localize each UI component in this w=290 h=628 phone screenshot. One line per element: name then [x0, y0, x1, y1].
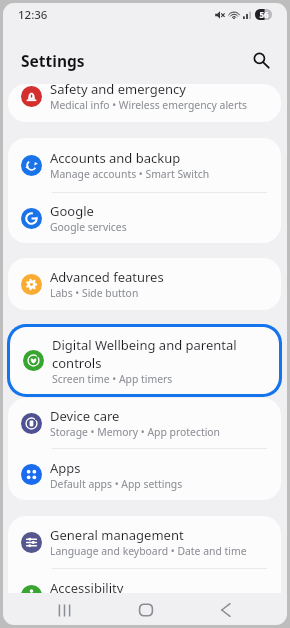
- button[interactable]: Google: [8, 193, 281, 243]
- staticText: Advanced features: [50, 268, 164, 286]
- staticText: Storage • Memory • App protection: [50, 425, 221, 439]
- staticText: Manage accounts • Smart Switch: [50, 167, 210, 181]
- button[interactable]: Apps: [8, 449, 281, 500]
- staticText: Safety and emergency: [50, 84, 186, 98]
- staticText: 12:36: [18, 7, 48, 23]
- staticText: Screen time • App timers: [52, 372, 173, 386]
- button[interactable]: Safety and emergency: [8, 84, 281, 115]
- staticText: Accounts and backup: [50, 149, 181, 167]
- button[interactable]: Search: [248, 47, 274, 73]
- button[interactable]: Advanced features: [8, 258, 281, 310]
- staticText: General management: [50, 526, 184, 544]
- staticText: Labs • Side button: [50, 286, 139, 300]
- button[interactable]: Recent apps: [49, 595, 79, 625]
- staticText: Settings: [21, 50, 85, 71]
- button[interactable]: Accounts and backup: [8, 138, 281, 192]
- button[interactable]: Back: [211, 595, 241, 625]
- staticText: Google: [50, 202, 94, 220]
- staticText: Device care: [50, 407, 120, 425]
- button[interactable]: Digital Wellbeing and parental controls: [10, 327, 279, 394]
- staticText: Google services: [50, 220, 127, 234]
- staticText: Accessibility: [50, 579, 124, 593]
- staticText: Language and keyboard • Date and time: [50, 544, 247, 558]
- button[interactable]: General management: [8, 516, 281, 568]
- staticText: Apps: [50, 459, 81, 477]
- staticText: Medical info • Wireless emergency alerts: [50, 98, 247, 112]
- button[interactable]: Home: [131, 595, 161, 625]
- button[interactable]: Device care: [8, 398, 281, 448]
- staticText: Default apps • App settings: [50, 477, 183, 491]
- staticText: Digital Wellbeing and parental controls: [52, 336, 269, 372]
- staticText: 56: [259, 9, 269, 20]
- button[interactable]: Accessibility: [8, 569, 281, 593]
